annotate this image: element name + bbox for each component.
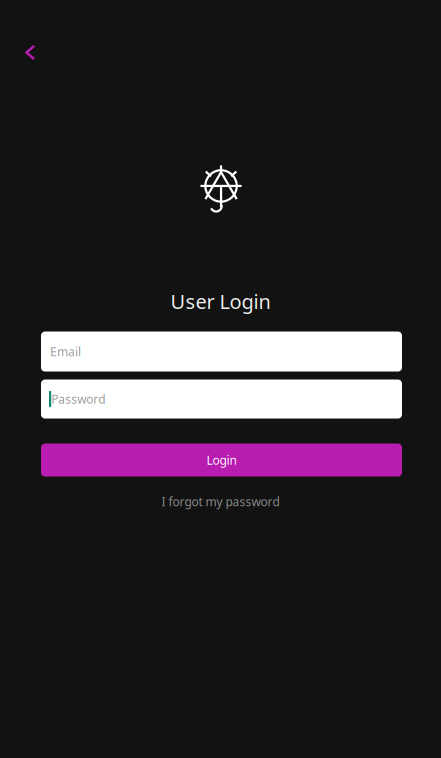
staticText: I forgot my password bbox=[161, 494, 279, 509]
button[interactable]: I forgot my password bbox=[161, 494, 279, 509]
staticText: Login bbox=[206, 452, 236, 468]
staticText: Password bbox=[51, 391, 105, 407]
button[interactable]: Login bbox=[41, 444, 402, 477]
button[interactable]: Back bbox=[0, 33, 52, 74]
staticText: User Login bbox=[170, 288, 270, 315]
staticText: Email bbox=[50, 344, 81, 359]
